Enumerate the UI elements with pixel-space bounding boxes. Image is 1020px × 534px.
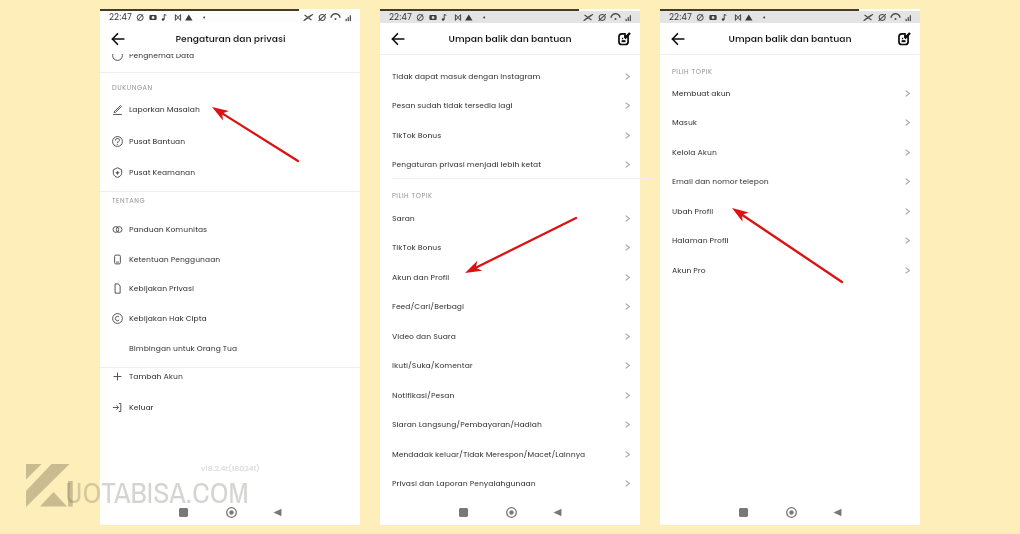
button[interactable]: TikTok Bonus (380, 232, 640, 262)
staticText: Akun Pro (672, 265, 706, 276)
button[interactable]: Kebijakan Privasi (100, 273, 360, 303)
button[interactable]: Back (386, 27, 410, 51)
staticText: Notifikasi/Pesan (392, 390, 455, 401)
button[interactable]: Home (782, 503, 800, 521)
button[interactable]: Mendadak keluar/Tidak Merespon/Macet/Lai… (380, 439, 640, 469)
button[interactable]: Keluar (100, 392, 360, 422)
button[interactable]: Penghemat Data (100, 40, 360, 70)
button[interactable]: Back (106, 27, 130, 51)
button[interactable]: Notifikasi/Pesan (380, 380, 640, 410)
button[interactable]: Akun Pro (660, 255, 920, 285)
staticText: DUKUNGAN (112, 83, 153, 92)
staticText: Umpan balik dan bantuan (728, 32, 852, 45)
staticText: Pusat Bantuan (129, 136, 186, 147)
staticText: Ubah Profil (672, 206, 714, 217)
staticText: Pusat Keamanan (129, 167, 196, 178)
button[interactable]: Pusat Bantuan (100, 126, 360, 156)
staticText: Mendadak keluar/Tidak Merespon/Macet/Lai… (392, 449, 586, 460)
staticText: TikTok Bonus (392, 130, 442, 141)
button[interactable]: Home (502, 503, 520, 521)
staticText: Keluar (129, 402, 154, 413)
button[interactable]: Pesan sudah tidak tersedia lagi (380, 90, 640, 120)
button[interactable]: Email dan nomor telepon (660, 166, 920, 196)
staticText: Kebijakan Privasi (129, 283, 195, 294)
button[interactable]: Video dan Suara (380, 321, 640, 351)
staticText: Privasi dan Laporan Penyalahgunaan (392, 478, 536, 489)
staticText: Masuk (672, 117, 698, 128)
button[interactable]: Membuat akun (660, 78, 920, 108)
staticText: Ketentuan Penggunaan (129, 254, 221, 265)
button[interactable]: TikTok Bonus (380, 120, 640, 150)
staticText: Ikuti/Suka/Komentar (392, 360, 473, 371)
staticText: v18.2.4t(180241) (201, 463, 260, 474)
button[interactable]: Tambah Akun (100, 361, 360, 391)
staticText: Penghemat Data (129, 50, 195, 61)
button[interactable]: Back (268, 503, 286, 521)
button[interactable]: Back (548, 503, 566, 521)
button[interactable]: Back (828, 503, 846, 521)
button[interactable]: Kebijakan Hak Cipta (100, 303, 360, 333)
button[interactable]: Write feedback (893, 28, 915, 50)
staticText: Bimbingan untuk Orang Tua (129, 343, 238, 354)
staticText: 22:47 (389, 11, 412, 23)
button[interactable]: Ketentuan Penggunaan (100, 244, 360, 274)
button[interactable]: Kelola Akun (660, 137, 920, 167)
staticText: Membuat akun (672, 88, 731, 99)
staticText: Email dan nomor telepon (672, 176, 769, 187)
staticText: Siaran Langsung/Pembayaran/Hadiah (392, 419, 542, 430)
button[interactable]: Saran (380, 203, 640, 233)
staticText: Kelola Akun (672, 147, 717, 158)
staticText: UOTABISA.COM (65, 472, 249, 512)
button[interactable]: Masuk (660, 107, 920, 137)
button[interactable]: Panduan Komunitas (100, 214, 360, 244)
button[interactable]: Write feedback (613, 28, 635, 50)
staticText: Tidak dapat masuk dengan Instagram (392, 71, 541, 82)
button[interactable]: Laporkan Masalah (100, 94, 360, 124)
button[interactable]: Recents (734, 503, 752, 521)
staticText: Saran (392, 213, 415, 224)
staticText: Akun dan Profil (392, 272, 450, 283)
staticText: Feed/Cari/Berbagi (392, 301, 465, 312)
staticText: Pengaturan dan privasi (175, 32, 286, 45)
button[interactable]: Privasi dan Laporan Penyalahgunaan (380, 468, 640, 498)
button[interactable]: Recents (174, 503, 192, 521)
button[interactable]: Tidak dapat masuk dengan Instagram (380, 61, 640, 91)
button[interactable]: Home (222, 503, 240, 521)
button[interactable]: Bimbingan untuk Orang Tua (100, 333, 360, 363)
button[interactable]: Back (666, 27, 690, 51)
button[interactable]: Ikuti/Suka/Komentar (380, 350, 640, 380)
button[interactable]: Pengaturan privasi menjadi lebih ketat (380, 149, 640, 179)
button[interactable]: Feed/Cari/Berbagi (380, 291, 640, 321)
staticText: Video dan Suara (392, 331, 456, 342)
staticText: PILIH TOPIK (392, 191, 433, 200)
staticText: Panduan Komunitas (129, 224, 208, 235)
staticText: Laporkan Masalah (129, 104, 200, 115)
staticText: Tambah Akun (129, 371, 183, 382)
staticText: 22:47 (669, 11, 692, 23)
button[interactable]: Halaman Profil (660, 225, 920, 255)
button[interactable]: Pusat Keamanan (100, 157, 360, 187)
staticText: Halaman Profil (672, 235, 729, 246)
staticText: 22:47 (109, 11, 132, 23)
button[interactable]: Akun dan Profil (380, 262, 640, 292)
staticText: PILIH TOPIK (672, 67, 713, 76)
staticText: TikTok Bonus (392, 242, 442, 253)
button[interactable]: Siaran Langsung/Pembayaran/Hadiah (380, 409, 640, 439)
button[interactable]: Ubah Profil (660, 196, 920, 226)
staticText: Umpan balik dan bantuan (448, 32, 572, 45)
staticText: Pesan sudah tidak tersedia lagi (392, 100, 513, 111)
staticText: Kebijakan Hak Cipta (129, 313, 207, 324)
staticText: TENTANG (112, 196, 146, 205)
staticText: Pengaturan privasi menjadi lebih ketat (392, 159, 541, 170)
button[interactable]: Recents (454, 503, 472, 521)
